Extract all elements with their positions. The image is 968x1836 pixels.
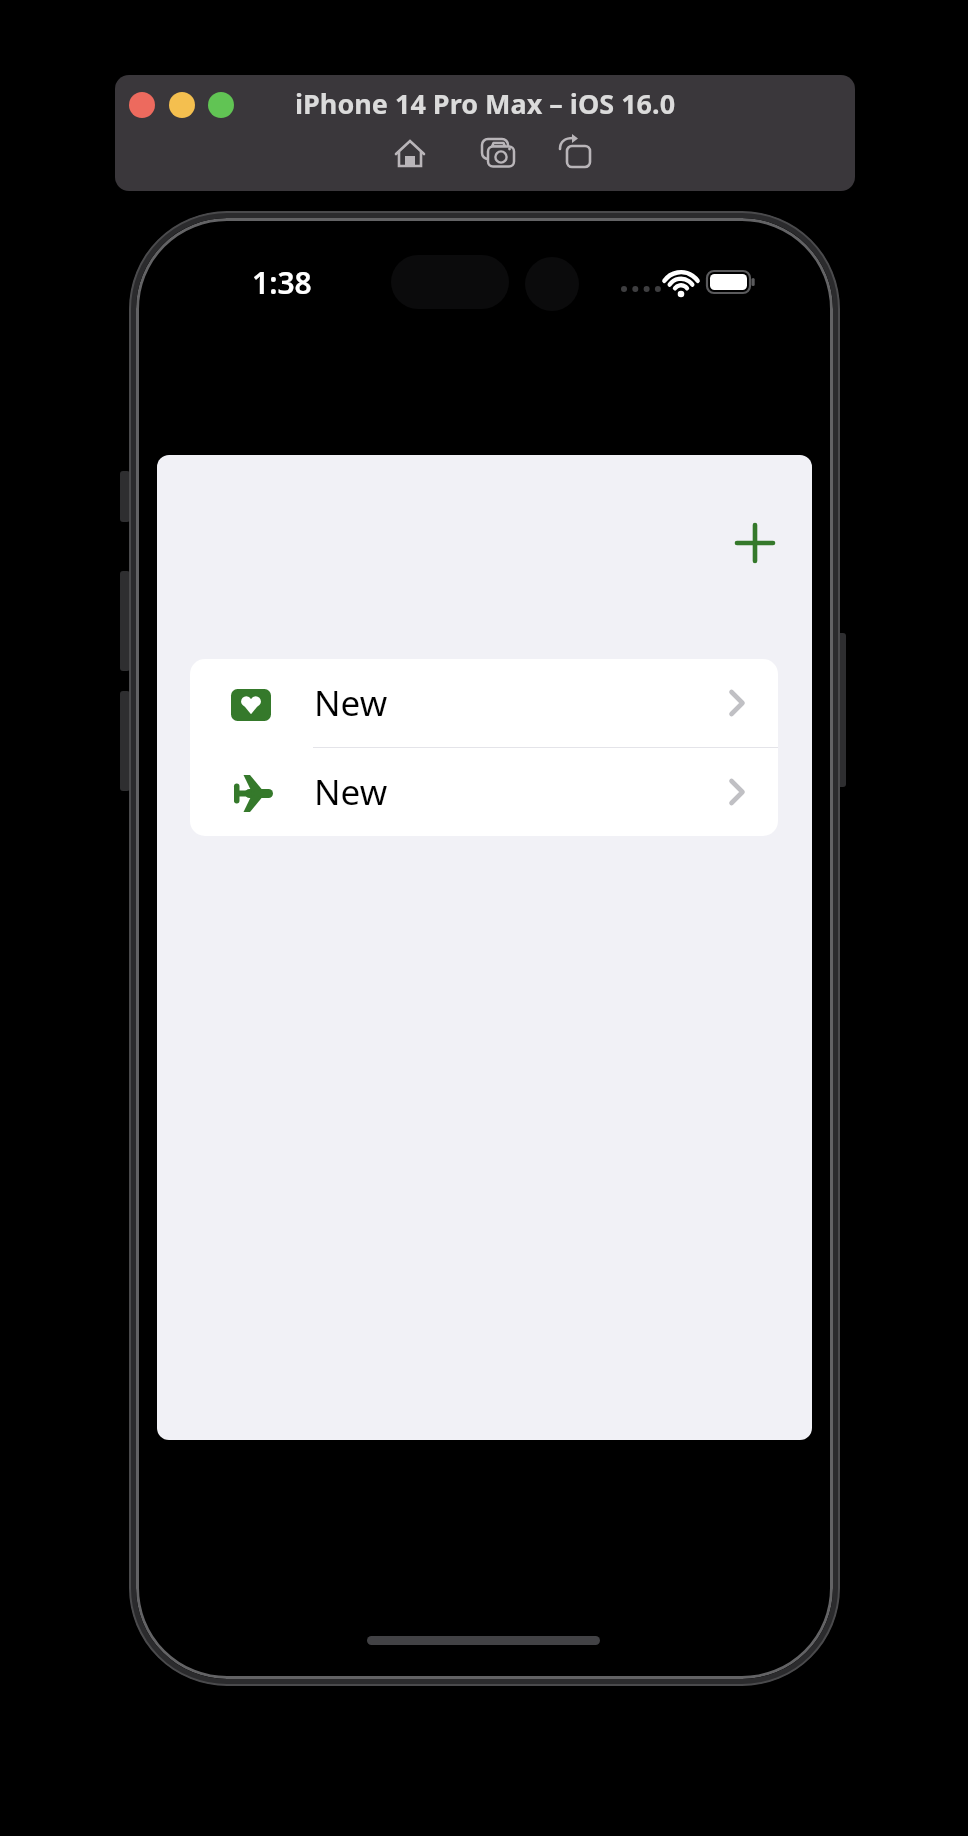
staticText: New [314,679,388,727]
button[interactable]: New [190,659,778,747]
staticText: 1:38 [252,262,312,303]
button[interactable] [467,134,527,174]
button[interactable] [208,92,234,118]
button[interactable]: New [190,748,778,836]
button[interactable] [129,92,155,118]
staticText: New [314,768,388,816]
button[interactable] [380,134,440,174]
staticText: iPhone 14 Pro Max – iOS 16.0 [295,85,676,122]
button[interactable] [548,134,608,174]
button[interactable] [169,92,195,118]
button[interactable] [733,521,777,565]
